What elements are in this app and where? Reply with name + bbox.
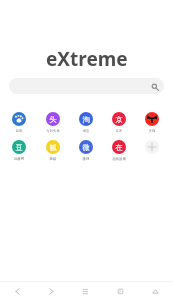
staticText: 狐 (49, 143, 57, 152)
button[interactable]: 在线直播 (103, 140, 135, 161)
staticText: 淘宝 (70, 129, 102, 133)
staticText: 微 (82, 143, 90, 152)
staticText: 豆 (15, 143, 23, 152)
button[interactable]: Forward (34, 282, 68, 300)
button[interactable]: Back (0, 282, 34, 300)
button[interactable]: Menu (68, 282, 103, 300)
button[interactable]: Home (138, 282, 173, 300)
staticText: eXtreme (46, 46, 128, 72)
staticText: 在 (115, 143, 123, 152)
staticText: 天猫 (136, 129, 168, 133)
button[interactable]: 微博 (70, 140, 102, 161)
button[interactable]: 豆瓣网 (3, 140, 35, 161)
staticText: 豆瓣网 (3, 157, 35, 161)
staticText: 京 (115, 115, 123, 124)
button[interactable]: 搜狐 (37, 140, 69, 161)
button[interactable]: Search (9, 78, 164, 94)
staticText: 在线直播 (103, 157, 135, 161)
button[interactable]: 淘宝 (70, 112, 102, 133)
button[interactable]: Tabs (103, 282, 138, 300)
button[interactable]: 百度 (3, 112, 35, 133)
staticText: 今日头条 (37, 129, 69, 133)
staticText: 搜狐 (37, 157, 69, 161)
button[interactable]: 今日头条 (37, 112, 69, 133)
button[interactable]: 京东 (103, 112, 135, 133)
staticText: 淘 (82, 115, 90, 124)
button[interactable]: Add shortcut (136, 140, 168, 162)
staticText: 京东 (103, 129, 135, 133)
staticText: 头 (49, 115, 57, 124)
button[interactable]: 天猫 (136, 112, 168, 133)
staticText: 百度 (3, 129, 35, 133)
staticText: 微博 (70, 157, 102, 161)
